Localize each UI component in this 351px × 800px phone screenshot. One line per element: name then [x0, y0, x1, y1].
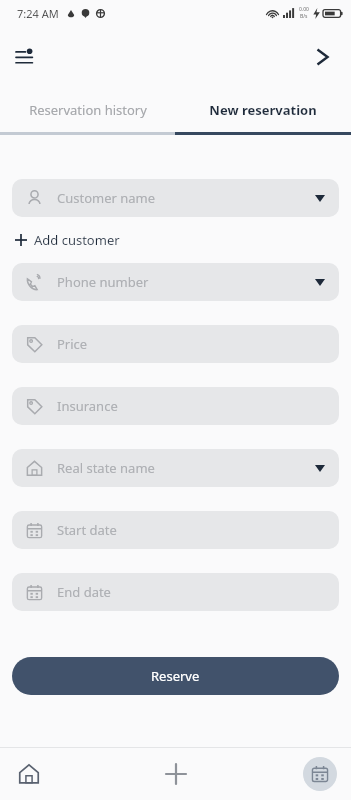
staticText: 7:24 AM [17, 6, 59, 21]
button[interactable]: End date [12, 573, 339, 611]
button[interactable]: Add customer [12, 227, 122, 253]
button[interactable]: Insurance [12, 387, 339, 425]
button[interactable]: Add [117, 748, 234, 800]
staticText: Phone number [57, 273, 149, 291]
staticText: Price [57, 335, 88, 353]
staticText: Insurance [57, 397, 118, 415]
staticText: Real state name [57, 459, 155, 477]
staticText: B/s [300, 13, 308, 20]
button[interactable]: Price [12, 325, 339, 363]
button[interactable]: Reserve [12, 657, 339, 695]
button[interactable]: Customer name [12, 179, 339, 217]
button[interactable]: Next [305, 39, 341, 75]
button[interactable]: New reservation [175, 88, 351, 132]
button[interactable]: Phone number [12, 263, 339, 301]
staticText: Customer name [57, 189, 156, 207]
staticText: Add customer [34, 231, 120, 249]
staticText: Reserve [151, 667, 200, 685]
button[interactable]: Reservations [234, 748, 351, 800]
staticText: Start date [57, 521, 117, 539]
button[interactable]: Home [0, 748, 117, 800]
staticText: End date [57, 583, 111, 601]
staticText: 0.00 [299, 6, 309, 13]
button[interactable]: Start date [12, 511, 339, 549]
button[interactable]: Reservation history [0, 88, 175, 132]
staticText: Reservation history [29, 101, 147, 119]
staticText: New reservation [209, 101, 317, 119]
button[interactable]: Menu [8, 39, 44, 75]
button[interactable]: Real state name [12, 449, 339, 487]
